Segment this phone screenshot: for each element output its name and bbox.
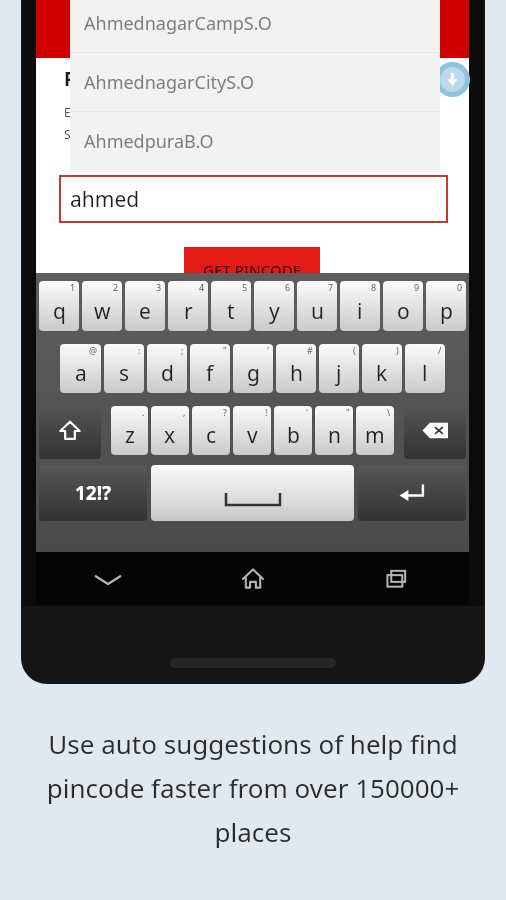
staticText: d <box>161 359 174 388</box>
staticText: / <box>438 344 442 356</box>
button[interactable]: GET PINCODE <box>184 247 320 277</box>
button[interactable]: 12!? <box>39 465 147 521</box>
button[interactable]: AhmednagarCityS.O <box>84 53 440 111</box>
staticText: P <box>64 66 76 92</box>
button[interactable]: / <box>405 344 445 393</box>
staticText: e <box>139 297 151 326</box>
staticText: ! <box>265 406 268 418</box>
staticText: ) <box>396 344 399 356</box>
staticText: o <box>397 297 410 326</box>
staticText: GET PINCODE <box>203 260 301 280</box>
staticText: 0 <box>457 281 463 293</box>
staticText: x <box>164 421 176 450</box>
button[interactable]: Delete <box>404 402 466 459</box>
staticText: y <box>269 297 280 326</box>
button[interactable]: Home <box>223 557 283 601</box>
button[interactable]: ahmed <box>60 176 447 222</box>
button[interactable]: ) <box>362 344 402 393</box>
staticText: f <box>206 359 214 388</box>
staticText: ahmed <box>70 185 140 214</box>
button[interactable]: 5 <box>211 281 251 331</box>
button[interactable]: # <box>276 344 316 393</box>
staticText: @ <box>89 344 98 356</box>
button[interactable]: 4 <box>168 281 208 331</box>
button[interactable]: Shift <box>39 402 101 459</box>
staticText: Use auto suggestions of help find pincod… <box>28 726 478 849</box>
button[interactable]: " <box>315 406 353 455</box>
button[interactable]: 3 <box>125 281 165 331</box>
staticText: t <box>227 297 235 326</box>
button[interactable]: AhmednagarCampS.O <box>84 0 440 52</box>
staticText: ' <box>267 344 270 356</box>
staticText: w <box>94 297 111 326</box>
button[interactable]: \ <box>356 406 394 455</box>
staticText: b <box>287 421 300 450</box>
button[interactable]: 9 <box>383 281 423 331</box>
staticText: ( <box>353 344 356 356</box>
staticText: u <box>311 297 324 326</box>
staticText: ; <box>181 344 184 356</box>
staticText: 6 <box>285 281 291 293</box>
button[interactable]: 1 <box>39 281 79 331</box>
staticText: " <box>223 344 227 356</box>
staticText: 2 <box>113 281 119 293</box>
staticText: 4 <box>199 281 205 293</box>
staticText: m <box>365 421 385 450</box>
staticText: g <box>247 359 260 388</box>
staticText: # <box>307 344 313 356</box>
staticText: q <box>53 297 66 326</box>
staticText: " <box>346 406 350 418</box>
staticText: ? <box>223 406 227 418</box>
staticText: : <box>138 344 141 356</box>
button[interactable]: Enter <box>358 465 466 521</box>
button[interactable]: Download <box>435 62 470 97</box>
button[interactable]: Recent apps <box>367 557 427 601</box>
staticText: k <box>376 359 388 388</box>
staticText: a <box>75 359 87 388</box>
staticText: r <box>184 297 193 326</box>
button[interactable]: ' <box>274 406 312 455</box>
staticText: AhmedpuraB.O <box>84 129 214 154</box>
staticText: 8 <box>371 281 377 293</box>
button[interactable]: . <box>111 406 148 455</box>
staticText: v <box>247 421 258 450</box>
button[interactable]: ' <box>233 344 273 393</box>
button[interactable]: Space <box>151 465 354 521</box>
staticText: AhmednagarCampS.O <box>84 11 272 36</box>
staticText: ' <box>306 406 309 418</box>
staticText: p <box>440 297 453 326</box>
staticText: , <box>183 406 186 418</box>
staticText: 7 <box>328 281 334 293</box>
button[interactable]: @ <box>60 344 101 393</box>
button[interactable]: AhmedpuraB.O <box>84 112 440 170</box>
staticText: AhmednagarCityS.O <box>84 70 255 95</box>
button[interactable]: 0 <box>426 281 466 331</box>
staticText: z <box>125 421 135 450</box>
staticText: S <box>64 126 71 142</box>
staticText: 5 <box>242 281 248 293</box>
staticText: j <box>336 359 342 388</box>
staticText: \ <box>387 406 391 418</box>
staticText: 3 <box>156 281 162 293</box>
button[interactable]: ! <box>233 406 271 455</box>
staticText: i <box>357 297 363 326</box>
staticText: 1 <box>70 281 76 293</box>
staticText: 9 <box>414 281 420 293</box>
button[interactable]: " <box>190 344 230 393</box>
button[interactable]: : <box>104 344 144 393</box>
staticText: c <box>206 421 217 450</box>
staticText: s <box>119 359 130 388</box>
button[interactable]: 6 <box>254 281 294 331</box>
staticText: n <box>328 421 341 450</box>
staticText: l <box>422 359 428 388</box>
button[interactable]: ( <box>319 344 359 393</box>
button[interactable]: 2 <box>82 281 122 331</box>
staticText: h <box>290 359 303 388</box>
button[interactable]: , <box>151 406 189 455</box>
button[interactable]: 8 <box>340 281 380 331</box>
button[interactable]: 7 <box>297 281 337 331</box>
button[interactable]: ? <box>192 406 230 455</box>
staticText: 12!? <box>75 480 112 506</box>
button[interactable]: ; <box>147 344 187 393</box>
button[interactable]: Hide keyboard <box>78 557 138 601</box>
